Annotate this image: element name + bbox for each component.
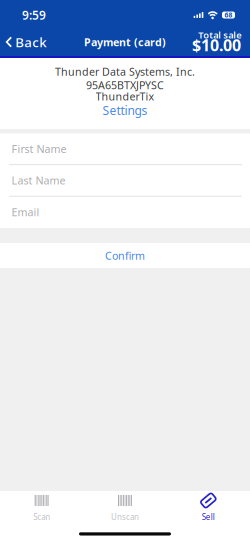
staticText: $10.00 <box>192 34 241 56</box>
staticText: Sell <box>202 511 215 522</box>
staticText: Unscan <box>111 511 139 522</box>
staticText: Total sale <box>198 29 241 41</box>
button[interactable]: Sell <box>167 491 250 531</box>
staticText: 95A65BTXJPYSC <box>86 78 164 92</box>
staticText: Back <box>15 33 46 51</box>
button[interactable]: Settings <box>102 102 147 118</box>
staticText: 68 <box>224 11 232 19</box>
button[interactable]: Back <box>0 28 52 56</box>
staticText: Email <box>12 205 40 219</box>
staticText: ThunderTix <box>95 89 154 103</box>
button[interactable]: Scan <box>0 491 83 531</box>
staticText: Scan <box>33 511 50 522</box>
button[interactable]: Total sale <box>190 28 250 56</box>
staticText: Last Name <box>12 173 66 187</box>
staticText: Confirm <box>105 248 145 263</box>
staticText: 9:59 <box>22 7 46 23</box>
staticText: First Name <box>12 142 67 156</box>
button[interactable]: Confirm <box>0 243 250 268</box>
button[interactable]: Unscan <box>83 491 167 531</box>
staticText: Payment (card) <box>84 35 166 49</box>
staticText: Settings <box>102 102 147 118</box>
staticText: Thunder Data Systems, Inc. <box>55 64 195 79</box>
